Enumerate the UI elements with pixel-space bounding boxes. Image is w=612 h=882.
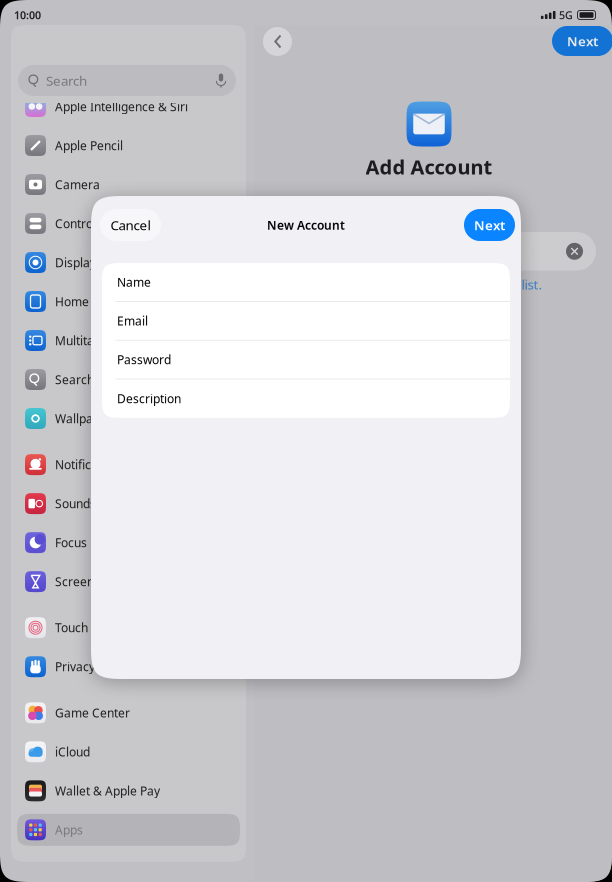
staticText: Sounds: [55, 496, 96, 511]
button[interactable]: Next: [464, 209, 515, 241]
button[interactable]: Search: [17, 363, 240, 395]
staticText: Wallpaper: [55, 410, 112, 426]
staticText: Cancel: [110, 216, 150, 234]
button[interactable]: Back: [263, 27, 292, 56]
staticText: Focus: [55, 535, 87, 550]
button[interactable]: Apps: [17, 814, 240, 846]
button[interactable]: Description: [102, 379, 510, 418]
button[interactable]: Cancel: [100, 209, 161, 241]
button[interactable]: Focus: [17, 527, 240, 559]
button[interactable]: Next: [552, 26, 612, 56]
staticText: Description: [117, 391, 181, 407]
staticText: Control Center: [55, 215, 137, 231]
button[interactable]: Apple Intelligence & Siri: [17, 90, 240, 122]
staticText: Home Screen & App Library: [55, 293, 210, 309]
staticText: Apps: [55, 822, 83, 838]
staticText: Multitasking & Gestures: [55, 332, 189, 348]
button[interactable]: Password: [102, 341, 510, 379]
staticText: Choose an account type from the list.: [315, 276, 542, 293]
button[interactable]: Game Center: [17, 697, 240, 729]
staticText: Wallet & Apple Pay: [55, 783, 160, 799]
staticText: Add Account: [365, 153, 492, 180]
button[interactable]: iCloud: [17, 736, 240, 768]
button[interactable]: Apple Pencil: [17, 129, 240, 161]
staticText: Next: [567, 32, 598, 50]
staticText: 10:00: [14, 8, 41, 22]
button[interactable]: Display & Brightness: [17, 246, 240, 278]
staticText: Search: [46, 72, 87, 89]
staticText: 5G: [559, 8, 573, 22]
button[interactable]: Home Screen & App Library: [17, 285, 240, 317]
staticText: New Account: [267, 217, 345, 233]
button[interactable]: Screen Time: [17, 566, 240, 598]
button[interactable]: Multitasking & Gestures: [17, 324, 240, 356]
button[interactable]: Notifications: [17, 449, 240, 481]
staticText: Notifications: [55, 457, 125, 472]
staticText: Search: [55, 371, 94, 387]
staticText: Name: [117, 274, 151, 290]
staticText: Email: [117, 313, 148, 329]
staticText: iCloud: [55, 744, 90, 760]
button[interactable]: Wallet & Apple Pay: [17, 775, 240, 807]
staticText: Password: [117, 352, 171, 367]
staticText: Privacy & Security: [55, 659, 155, 675]
staticText: Apple Intelligence & Siri: [55, 98, 188, 114]
button[interactable]: Touch ID & Passcode: [17, 612, 240, 644]
staticText: Touch ID & Passcode: [55, 620, 172, 636]
staticText: Game Center: [55, 705, 130, 721]
button[interactable]: Privacy & Security: [17, 651, 240, 683]
button[interactable]: Control Center: [17, 207, 240, 239]
button[interactable]: Sounds: [17, 488, 240, 520]
button[interactable]: Camera: [17, 168, 240, 200]
staticText: Next: [474, 216, 505, 234]
staticText: Camera: [55, 176, 100, 192]
button[interactable]: Email: [102, 302, 510, 341]
button[interactable]: Name: [102, 263, 510, 302]
staticText: Screen Time: [55, 574, 125, 589]
staticText: Apple Pencil: [55, 137, 123, 153]
staticText: Display & Brightness: [55, 254, 171, 270]
button[interactable]: Wallpaper: [17, 402, 240, 434]
